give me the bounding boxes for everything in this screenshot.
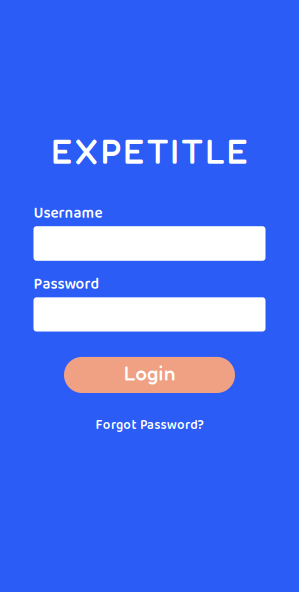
staticText: Password: [33, 272, 99, 297]
staticText: Username: [33, 201, 102, 226]
staticText: Forgot Password?: [95, 415, 203, 436]
staticText: Login: [124, 361, 175, 385]
staticText: EXPETITLE: [51, 131, 248, 172]
